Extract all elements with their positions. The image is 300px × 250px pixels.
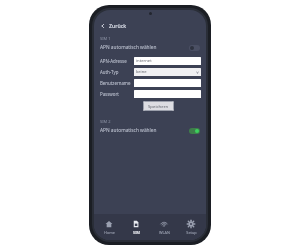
- button[interactable]: Setup: [178, 214, 204, 240]
- staticText: SIM: [133, 230, 140, 235]
- button[interactable]: Auth-Typ: [94, 66, 206, 77]
- button[interactable]: Back: [94, 19, 206, 32]
- button[interactable]: SIM: [123, 214, 149, 240]
- button[interactable]: APN automatisch wählen: [94, 125, 206, 136]
- staticText: Home: [104, 230, 115, 235]
- staticText: Setup: [186, 230, 197, 235]
- button[interactable]: Passwort: [94, 88, 206, 99]
- staticText: SIM 1: [100, 36, 111, 41]
- staticText: Passwort: [100, 91, 134, 97]
- other: SIM: [132, 220, 140, 228]
- staticText: APN automatisch wählen: [100, 127, 189, 134]
- button[interactable]: Speichern: [143, 101, 174, 111]
- staticText: APN-Adresse: [100, 58, 134, 64]
- staticText: Zurück: [109, 22, 127, 29]
- staticText: APN automatisch wählen: [100, 44, 189, 51]
- other: Setup: [187, 220, 195, 228]
- button[interactable]: Home: [96, 214, 122, 240]
- staticText: Speichern: [148, 103, 169, 109]
- other: Home: [105, 220, 113, 228]
- button[interactable]: WLAN: [151, 214, 177, 240]
- other: WLAN: [160, 220, 168, 228]
- staticText: SIM 2: [100, 119, 111, 124]
- button[interactable]: Benutzername: [94, 77, 206, 88]
- button[interactable]: APN automatisch wählen: [94, 42, 206, 53]
- staticText: WLAN: [159, 230, 170, 235]
- staticText: Auth-Typ: [100, 69, 134, 75]
- button[interactable]: APN-Adresse: [94, 55, 206, 66]
- staticText: keine: [136, 69, 147, 75]
- staticText: Benutzername: [100, 80, 134, 86]
- staticText: internet: [136, 58, 152, 64]
- other: Back: [100, 23, 106, 29]
